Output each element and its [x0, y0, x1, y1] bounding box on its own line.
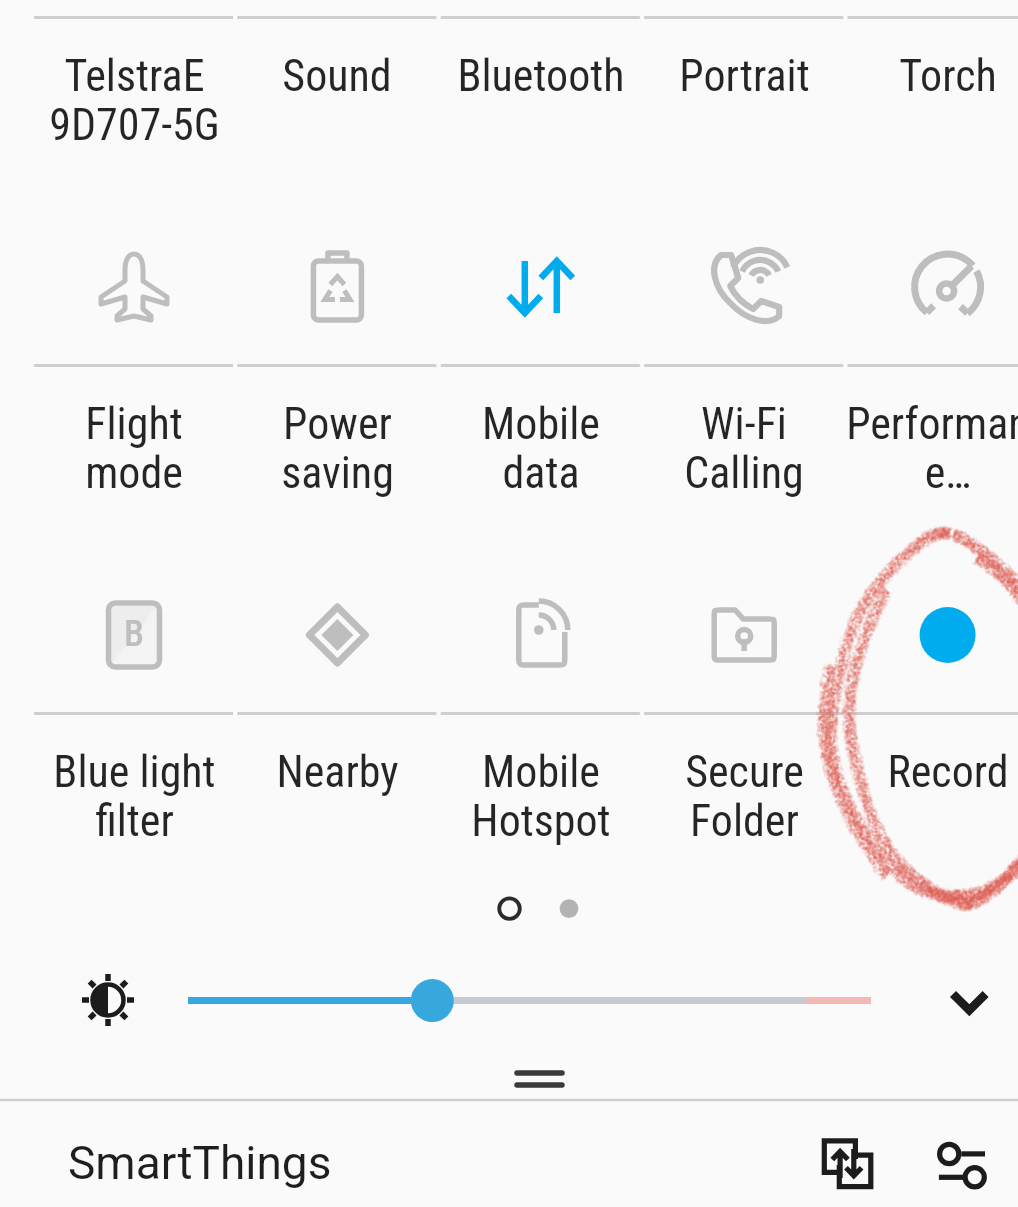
- staticText: Power saving: [281, 398, 394, 499]
- staticText: Nearby: [276, 746, 399, 798]
- staticText: Torch: [899, 50, 997, 102]
- staticText: Record: [887, 746, 1009, 798]
- button[interactable]: Nearby: [137, 746, 537, 866]
- staticText: Mobile Hotspot: [471, 746, 611, 847]
- button[interactable]: Flight mode: [0, 398, 334, 518]
- button[interactable]: Media output: [808, 1124, 888, 1204]
- staticText: Sound: [282, 50, 392, 102]
- button[interactable]: Record: [748, 746, 1018, 866]
- button[interactable]: Performanc e…: [748, 398, 1018, 518]
- staticText: SmartThings: [68, 1136, 332, 1190]
- button[interactable]: Wi-Fi Calling: [544, 398, 944, 518]
- button[interactable]: Portrait: [544, 50, 944, 170]
- button[interactable]: Torch: [748, 50, 1018, 170]
- staticText: B: [124, 613, 144, 655]
- staticText: Bluetooth: [457, 50, 625, 102]
- button[interactable]: Mobile Hotspot: [341, 746, 741, 866]
- staticText: Performanc e…: [846, 398, 1018, 499]
- button[interactable]: Secure Folder: [544, 746, 944, 866]
- staticText: Blue light filter: [53, 746, 216, 847]
- staticText: Mobile data: [482, 398, 600, 499]
- staticText: Portrait: [679, 50, 810, 102]
- staticText: Secure Folder: [685, 746, 804, 847]
- button[interactable]: Power saving: [137, 398, 537, 518]
- button[interactable]: TelstraE 9D707-5G: [0, 50, 334, 170]
- button[interactable]: Bluetooth: [341, 50, 741, 170]
- button[interactable]: Blue light filter: [0, 746, 334, 866]
- staticText: TelstraE 9D707-5G: [49, 50, 220, 151]
- staticText: Flight mode: [85, 398, 183, 499]
- button[interactable]: Sound: [137, 50, 537, 170]
- button[interactable]: Mobile data: [341, 398, 741, 518]
- button[interactable]: Settings: [922, 1124, 1002, 1204]
- staticText: Wi-Fi Calling: [684, 398, 804, 499]
- button[interactable]: SmartThings: [38, 1127, 358, 1199]
